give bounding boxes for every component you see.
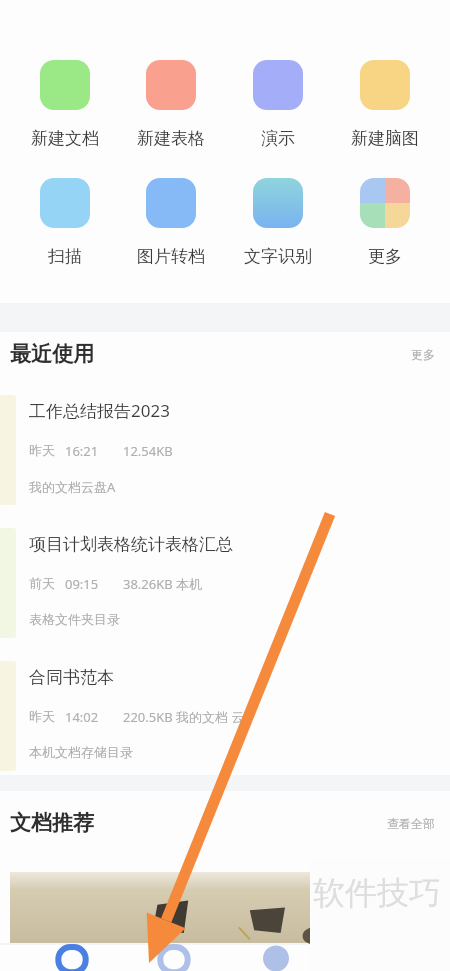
staticText: 09:15 <box>65 575 99 593</box>
button[interactable]: 首页 <box>42 945 102 963</box>
staticText: 工作总结报告2023 <box>29 399 170 422</box>
staticText: 新建文档 <box>31 128 99 149</box>
staticText: 演示 <box>261 128 295 149</box>
button[interactable]: 应用 <box>246 945 306 963</box>
button[interactable]: 文档 <box>144 945 204 963</box>
button[interactable]: 项目计划表格统计表格汇总 <box>0 509 450 642</box>
button[interactable]: 工作总结报告2023 <box>0 376 450 509</box>
staticText: 软件技巧 <box>313 873 441 913</box>
button[interactable]: 新建脑图 <box>331 60 438 149</box>
staticText: 表格文件夹目录 <box>29 611 120 627</box>
staticText: 16:21 <box>65 442 99 460</box>
staticText: 项目计划表格统计表格汇总 <box>29 534 233 555</box>
staticText: 14:02 <box>65 708 99 726</box>
staticText: 新建脑图 <box>351 128 419 149</box>
button[interactable]: 更多 <box>331 178 438 267</box>
staticText: 图片转档 <box>137 246 205 267</box>
staticText: 最近使用 <box>10 341 94 367</box>
staticText: 本机文档存储目录 <box>29 744 133 760</box>
button[interactable]: 查看全部 <box>387 816 435 831</box>
staticText: 38.26KB 本机 <box>123 575 203 593</box>
button[interactable]: 新建文档 <box>12 60 118 149</box>
staticText: 文档推荐 <box>10 810 94 836</box>
staticText: 文字识别 <box>244 246 312 267</box>
staticText: 查看全部 <box>387 816 435 831</box>
staticText: 昨天 <box>29 442 55 458</box>
staticText: 前天 <box>29 575 55 591</box>
button[interactable]: 新建表格 <box>118 60 224 149</box>
staticText: 12.54KB <box>123 442 173 460</box>
staticText: 更多 <box>368 246 402 267</box>
button[interactable]: 更多 <box>411 347 435 362</box>
staticText: 扫描 <box>48 246 82 267</box>
button[interactable]: 图片转档 <box>118 178 224 267</box>
staticText: 昨天 <box>29 708 55 724</box>
staticText: 220.5KB 我的文档 云 <box>123 708 245 726</box>
button[interactable] <box>10 872 450 943</box>
button[interactable]: 扫描 <box>12 178 118 267</box>
staticText: 新建表格 <box>137 128 205 149</box>
button[interactable]: 合同书范本 <box>0 642 450 775</box>
staticText: 合同书范本 <box>29 667 114 688</box>
staticText: 更多 <box>411 347 435 362</box>
button[interactable]: 文字识别 <box>224 178 331 267</box>
staticText: 我的文档云盘A <box>29 478 116 496</box>
button[interactable]: 演示 <box>224 60 331 149</box>
